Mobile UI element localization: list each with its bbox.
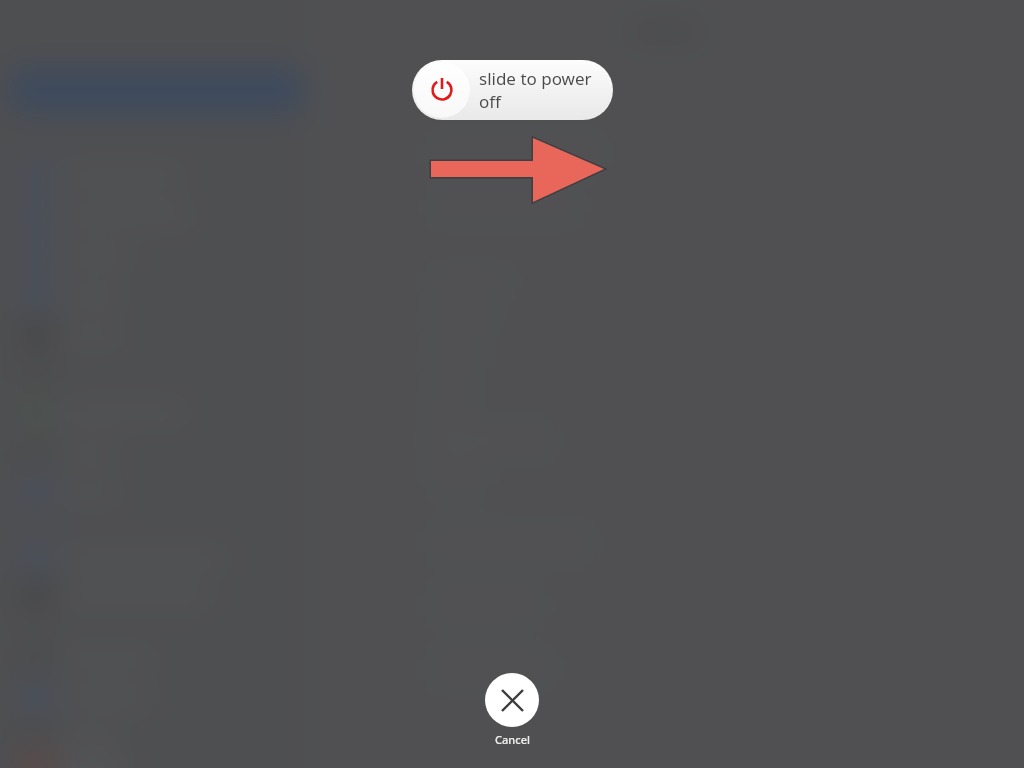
- staticText: slide to power off: [479, 67, 613, 113]
- staticText: Cancel: [495, 732, 530, 747]
- button[interactable]: Cancel: [477, 673, 547, 747]
- button[interactable]: slide to power off: [412, 60, 613, 120]
